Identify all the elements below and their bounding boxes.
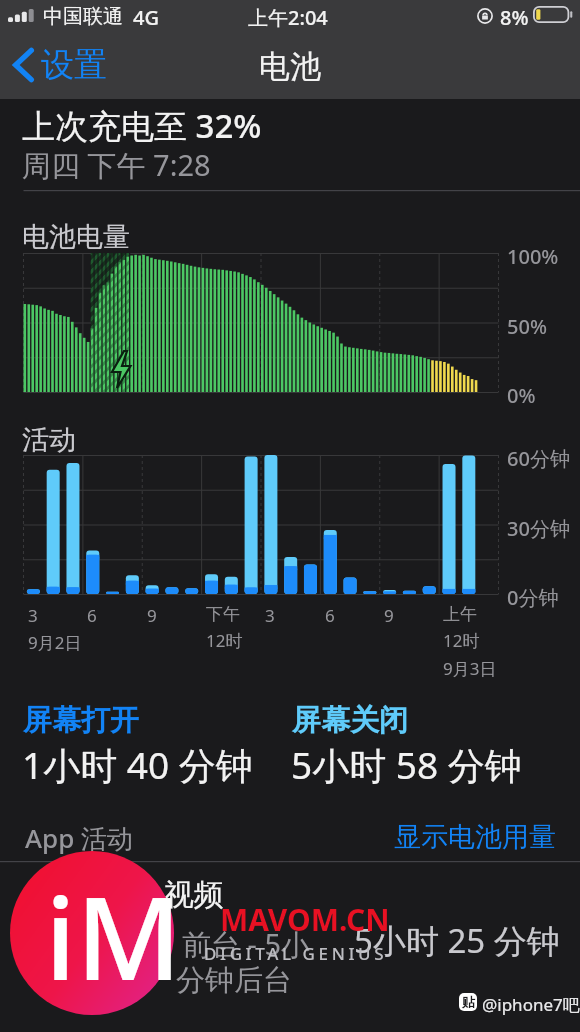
button[interactable]: 显示电池用量 [394, 820, 556, 854]
staticText: 活动 [22, 423, 76, 457]
staticText: 4G [133, 4, 159, 31]
staticText: 设置 [41, 44, 107, 86]
staticText: 5小时 25 分钟 [354, 918, 560, 963]
staticText: 显示电池用量 [394, 820, 556, 854]
staticText: 6 [325, 604, 335, 627]
staticText: 0% [507, 382, 536, 409]
staticText: 100% [507, 243, 559, 270]
staticText: MAVOM.CN [220, 899, 390, 940]
staticText: 9 [147, 604, 157, 627]
staticText: DIGITAL GENIUS [204, 942, 388, 965]
staticText: 贴 [462, 994, 475, 1010]
staticText: 0分钟 [507, 584, 559, 611]
staticText: 周四 下午 7:28 [22, 145, 211, 185]
staticText: 下午 12时 [206, 604, 243, 652]
staticText: 30分钟 [507, 515, 570, 542]
staticText: 6 [87, 604, 97, 627]
staticText: 中国联通 [43, 4, 123, 29]
staticText: iM [45, 857, 182, 1014]
staticText: 50% [507, 313, 547, 340]
staticText: 5小时 58 分钟 [291, 739, 522, 790]
staticText: 1小时 40 分钟 [22, 739, 253, 790]
staticText: 上午2:04 [248, 4, 328, 31]
staticText: 9月3日 [443, 657, 497, 680]
staticText: 电池电量 [22, 220, 130, 254]
staticText: 上午 12时 [443, 604, 480, 652]
staticText: 8% [500, 4, 529, 31]
staticText: 前台 - 5小 [182, 924, 311, 964]
button[interactable]: 设置 [0, 40, 119, 90]
staticText: 3 [28, 604, 38, 627]
staticText: 上次充电至 32% [22, 103, 262, 148]
staticText: 屏幕关闭 [292, 702, 408, 739]
staticText: 9 [384, 604, 394, 627]
staticText: 屏幕打开 [23, 702, 139, 739]
staticText: 60分钟 [507, 445, 570, 472]
staticText: 电池 [259, 47, 321, 86]
staticText: App 活动 [25, 820, 134, 856]
staticText: @iphone7吧 [482, 993, 580, 1016]
staticText: 9月2日 [28, 631, 82, 654]
staticText: 3 [265, 604, 275, 627]
staticText: 分钟后台 [176, 962, 292, 999]
staticText: 视频 [164, 876, 224, 914]
